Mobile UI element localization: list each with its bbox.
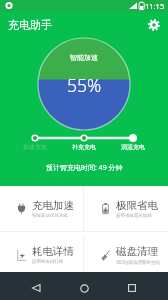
staticText: 超强省电延长续航 xyxy=(116,213,152,219)
staticText: 智能加速 xyxy=(70,53,98,62)
staticText: 补充充电 xyxy=(71,143,97,151)
staticText: 磁盘清理 xyxy=(116,245,158,258)
staticText: 应用耗电排行榜 xyxy=(32,259,64,265)
staticText: 预计需充电时间: 49 分钟 xyxy=(46,163,123,173)
button[interactable]: Recents xyxy=(120,276,144,300)
staticText: 充电助手 xyxy=(8,18,52,32)
button[interactable]: 充电加速 xyxy=(0,186,83,231)
button[interactable]: Home xyxy=(72,276,96,300)
staticText: 极限省电 xyxy=(116,199,158,212)
staticText: 耗电详情 xyxy=(32,245,74,258)
button[interactable]: 极限省电 xyxy=(84,186,168,231)
staticText: 智能算法优化充电 xyxy=(32,213,68,219)
button[interactable]: Back xyxy=(24,276,48,300)
button[interactable]: 磁盘清理 xyxy=(84,235,168,275)
staticText: 涓流充电 xyxy=(120,143,146,151)
button[interactable]: 耗电详情 xyxy=(0,235,83,275)
staticText: 11:15 xyxy=(145,1,165,11)
staticText: 55% xyxy=(67,73,102,97)
staticText: 快速充电 xyxy=(22,143,48,151)
staticText: 充电加速 xyxy=(32,199,74,212)
button[interactable]: Settings xyxy=(144,15,164,35)
staticText: 363垃圾清理释放空间 xyxy=(116,259,160,265)
